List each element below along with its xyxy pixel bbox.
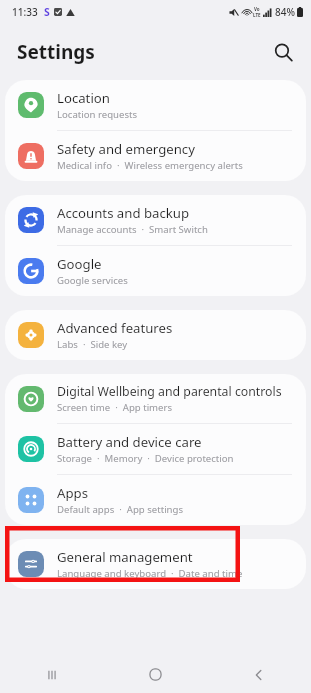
staticText: Battery and device care: [57, 433, 202, 451]
staticText: Apps: [57, 484, 88, 502]
staticText: Storage · Memory · Device protection: [57, 452, 234, 465]
staticText: Medical info · Wireless emergency alerts: [57, 159, 243, 172]
staticText: 11:33: [12, 5, 38, 19]
staticText: Manage accounts · Smart Switch: [57, 223, 208, 236]
button[interactable]: Recent apps: [0, 656, 103, 693]
button[interactable]: Accounts and backup: [5, 195, 306, 245]
staticText: Advanced features: [57, 319, 173, 337]
staticText: 84%: [275, 5, 295, 19]
staticText: Accounts and backup: [57, 204, 190, 222]
staticText: Location: [57, 89, 110, 107]
button[interactable]: Home: [103, 656, 207, 693]
staticText: LTE: [253, 12, 261, 18]
staticText: Google: [57, 255, 102, 273]
staticText: Default apps · App settings: [57, 503, 184, 516]
button[interactable]: Google: [5, 246, 306, 296]
button[interactable]: General management: [5, 539, 306, 589]
button[interactable]: Search: [266, 35, 300, 69]
button[interactable]: Apps: [5, 475, 306, 525]
staticText: General management: [57, 548, 193, 566]
staticText: Safety and emergency: [57, 140, 195, 158]
staticText: Digital Wellbeing and parental controls: [57, 383, 282, 400]
staticText: Location requests: [57, 108, 138, 121]
button[interactable]: Advanced features: [5, 310, 306, 360]
staticText: Screen time · App timers: [57, 401, 173, 414]
staticText: Language and keyboard · Date and time: [57, 567, 243, 580]
button[interactable]: Location: [5, 80, 306, 130]
staticText: Google services: [57, 274, 128, 287]
button[interactable]: Back: [207, 656, 311, 693]
staticText: S: [44, 5, 50, 19]
staticText: Labs · Side key: [57, 338, 128, 351]
button[interactable]: Safety and emergency: [5, 131, 306, 181]
staticText: Vo: [254, 6, 260, 12]
staticText: Settings: [17, 39, 95, 65]
button[interactable]: Battery and device care: [5, 424, 306, 474]
button[interactable]: Digital Wellbeing and parental controls: [5, 374, 306, 423]
